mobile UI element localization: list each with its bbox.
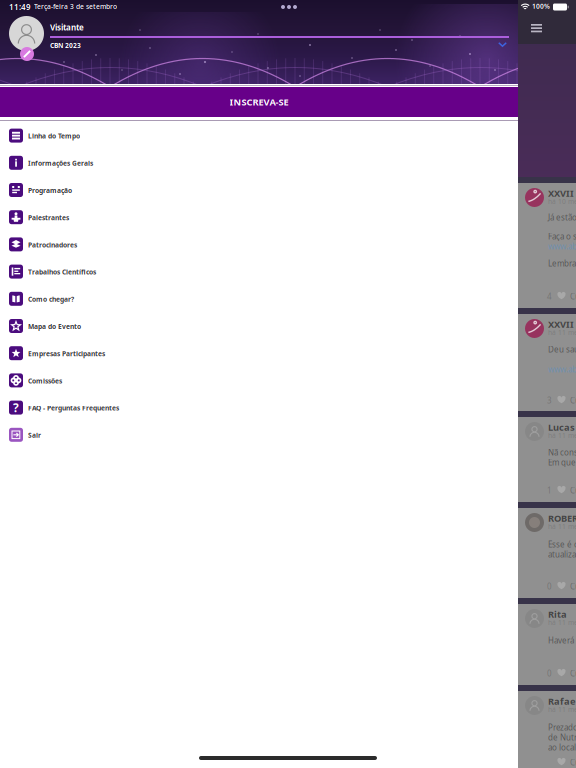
staticText: Patrocinadores (28, 240, 77, 249)
staticText: Já estão (548, 212, 576, 223)
staticText: Lembran (548, 258, 576, 269)
staticText: há 11 mes (548, 618, 576, 627)
staticText: Esse é o (548, 539, 576, 550)
staticText: de Nutrol (548, 732, 576, 743)
staticText: 0 (547, 668, 552, 679)
staticText: ao local e (548, 742, 576, 753)
staticText: Informações Gerais (28, 159, 93, 168)
staticText: www.abra (548, 241, 576, 252)
button[interactable]: Rita (518, 604, 576, 685)
staticText: ? (13, 400, 19, 415)
button[interactable]: Empresas Participantes (0, 343, 518, 370)
staticText: Programação (28, 186, 72, 195)
staticText: há 11 mes (548, 705, 576, 714)
staticText: Palestrantes (28, 213, 69, 222)
staticText: Cu (570, 757, 576, 768)
button[interactable]: Linha do Tempo (0, 125, 518, 152)
staticText: 11:49 (9, 1, 31, 12)
button[interactable]: INSCREVA-SE (0, 87, 518, 117)
button[interactable]: ? (0, 397, 518, 424)
staticText: Comissões (28, 376, 62, 385)
staticText: Cu (570, 395, 576, 406)
staticText: Rita (548, 608, 567, 620)
staticText: Lucas (548, 421, 575, 433)
staticText: há 11 mes (548, 431, 576, 440)
staticText: há 10 mes (548, 197, 576, 206)
staticText: Mapa do Evento (28, 322, 81, 331)
button[interactable]: Comissões (0, 370, 518, 397)
staticText: Linha do Tempo (28, 132, 80, 140)
button[interactable]: Rafael (518, 691, 576, 768)
button[interactable]: XXVII Co (518, 183, 576, 308)
staticText: Trabalhos Científicos (28, 268, 96, 276)
staticText: Cu (570, 291, 576, 302)
button[interactable]: Sair (0, 424, 518, 451)
staticText: Sair (28, 431, 41, 440)
staticText: 0 (547, 581, 552, 592)
staticText: Em que p (548, 457, 576, 468)
staticText: Faça o se (548, 231, 576, 242)
staticText: 4 (547, 291, 552, 302)
button[interactable]: Menu (525, 18, 548, 39)
button[interactable]: Lucas (518, 417, 576, 502)
staticText: 1 (547, 485, 552, 496)
staticText: Deu sauc (548, 344, 576, 355)
staticText: há 11 mes (548, 522, 576, 531)
staticText: há 11 mes (548, 328, 576, 337)
button[interactable]: Trabalhos Científicos (0, 261, 518, 288)
staticText: Cu (570, 485, 576, 496)
staticText: 3 (547, 395, 552, 406)
staticText: Prezados (548, 722, 576, 733)
staticText: XXVII Co (548, 318, 576, 330)
staticText: Cu (570, 668, 576, 679)
staticText: Cu (570, 581, 576, 592)
button[interactable]: Informações Gerais (0, 152, 518, 179)
button[interactable]: Palestrantes (0, 207, 518, 234)
button[interactable]: Programação (0, 179, 518, 207)
button[interactable]: Mapa do Evento (0, 315, 518, 343)
staticText: Haverá d (548, 635, 576, 646)
staticText: atualizaç (548, 549, 576, 560)
staticText: 100% (532, 2, 550, 11)
staticText: INSCREVA-SE (229, 96, 288, 108)
staticText: Nã consig (548, 447, 576, 458)
button[interactable]: ROBERT (518, 508, 576, 598)
staticText: XXVII Co (548, 187, 576, 199)
staticText: Como chegar? (28, 295, 74, 304)
staticText: CBN 2023 (50, 41, 81, 50)
button[interactable]: XXVII Co (518, 314, 576, 412)
staticText: ROBERT (548, 512, 576, 524)
staticText: Visitante (50, 22, 84, 33)
button[interactable]: Como chegar? (0, 288, 518, 315)
staticText: Empresas Participantes (28, 349, 105, 358)
staticText: Rafael (548, 695, 576, 707)
button[interactable]: Patrocinadores (0, 234, 518, 261)
staticText: FAQ - Perguntas Frequentes (28, 404, 119, 412)
staticText: www.abra (548, 364, 576, 375)
staticText: Terça-feira 3 de setembro (34, 2, 117, 11)
